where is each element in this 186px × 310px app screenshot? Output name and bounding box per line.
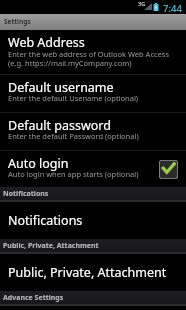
staticText: Default username [8,79,114,96]
staticText: Enter the default Usename (optional) [8,93,139,103]
staticText: Default password [8,117,111,134]
other: Status bar [0,0,186,14]
staticText: Notifications [3,189,49,199]
staticText: 7:44 [163,2,182,15]
button[interactable]: Default username [0,75,186,112]
button[interactable]: Notifications [0,202,186,239]
button[interactable]: Web Address [0,30,186,74]
staticText: Auto login [8,155,69,172]
staticText: Enter the default Password (optional) [8,131,139,141]
staticText: Notifications [8,212,83,229]
button[interactable]: Auto login [0,151,186,187]
button[interactable]: Default password [0,113,186,150]
button[interactable]: Auto login checkbox [159,160,178,179]
staticText: 3G [138,0,146,7]
staticText: Web Address [8,34,85,51]
staticText: Public, Private, Attachment [8,264,167,281]
staticText: Advance Settings [3,293,64,303]
staticText: Settings [4,17,31,26]
button[interactable]: Public, Private, Attachment [0,254,186,291]
staticText: Public, Private, Attachment [3,241,99,251]
staticText: Enter the web address of Outlook Web Acc… [8,49,182,68]
staticText: Auto login when app starts (optional) [8,169,139,179]
